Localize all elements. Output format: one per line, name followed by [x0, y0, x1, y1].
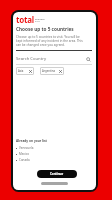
staticText: Canada [19, 158, 30, 162]
button[interactable]: Asia [16, 67, 34, 75]
staticText: Search Country [16, 56, 47, 62]
other: Remove Argentina [59, 70, 62, 73]
staticText: Argentina [42, 69, 55, 73]
staticText: Choose up to 5 countries [16, 26, 74, 32]
other: Search [86, 57, 91, 62]
staticText: Mexico [19, 152, 29, 156]
staticText: Continue [50, 172, 64, 176]
staticText: Choose up to 5 countries to visit. You w… [16, 35, 86, 47]
other: Remove Asia [29, 70, 32, 73]
staticText: a/s/q [35, 20, 40, 23]
button[interactable]: Search Country [13, 52, 96, 64]
staticText: total [16, 14, 34, 25]
staticText: Venezuela [19, 146, 34, 150]
button[interactable]: Argentina [40, 67, 64, 75]
button[interactable]: Continue [37, 170, 77, 178]
staticText: energies [35, 17, 45, 20]
staticText: Already on your list [16, 139, 47, 143]
staticText: Asia [18, 69, 24, 73]
